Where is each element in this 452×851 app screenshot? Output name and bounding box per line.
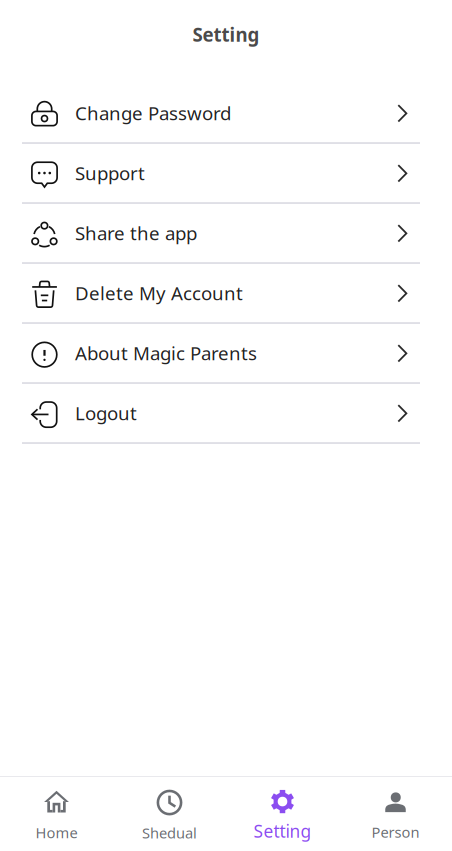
staticText: Change Password: [75, 101, 231, 125]
staticText: Support: [75, 161, 145, 185]
staticText: Setting: [192, 22, 259, 47]
button[interactable]: Shedual: [113, 777, 226, 851]
staticText: Person: [371, 822, 419, 842]
staticText: Delete My Account: [75, 281, 243, 305]
button[interactable]: Change Password: [0, 84, 452, 144]
staticText: About Magic Parents: [75, 341, 257, 365]
button[interactable]: Share the app: [0, 204, 452, 264]
staticText: Home: [35, 823, 77, 842]
button[interactable]: Home: [0, 777, 113, 851]
staticText: Logout: [75, 401, 137, 425]
button[interactable]: Setting: [226, 777, 339, 851]
button[interactable]: Person: [339, 777, 452, 851]
button[interactable]: About Magic Parents: [0, 324, 452, 384]
staticText: Setting: [253, 820, 311, 843]
staticText: Share the app: [75, 221, 197, 245]
button[interactable]: Logout: [0, 384, 452, 444]
staticText: Shedual: [142, 823, 197, 843]
button[interactable]: Delete My Account: [0, 264, 452, 324]
button[interactable]: Support: [0, 144, 452, 204]
